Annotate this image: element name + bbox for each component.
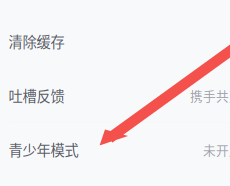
button[interactable]: 清除缓存 [0, 14, 230, 68]
button[interactable]: 吐槽反馈 [0, 69, 230, 122]
staticText: 未开启 [203, 140, 230, 159]
staticText: 清除缓存 [8, 31, 64, 52]
staticText: 青少年模式 [8, 139, 78, 160]
button[interactable]: 青少年模式 [0, 123, 230, 176]
staticText: 吐槽反馈 [8, 85, 64, 106]
staticText: 携手共建 [190, 86, 230, 105]
